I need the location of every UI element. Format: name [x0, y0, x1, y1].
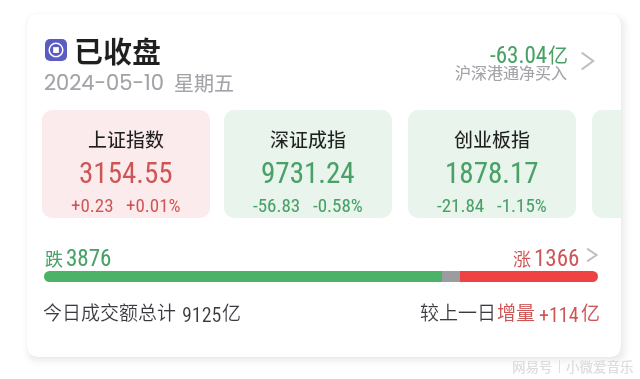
staticText: 亿 — [581, 298, 601, 326]
button[interactable]: 创业板指 — [408, 110, 576, 218]
staticText: 较上一日 — [420, 298, 497, 326]
staticText: 增量 — [497, 298, 536, 326]
staticText: 2024-05-10 — [44, 68, 164, 97]
staticText: 小微爱音乐 — [566, 356, 634, 376]
button[interactable]: 深证成指 — [224, 110, 392, 218]
staticText: 今日成交额总计 — [43, 298, 177, 326]
staticText: 9125 — [182, 303, 222, 326]
staticText: +0.23 — [71, 194, 114, 216]
staticText: 创业板指 — [454, 125, 531, 153]
staticText: 亿 — [548, 40, 568, 69]
staticText: 1878.17 — [445, 156, 539, 190]
staticText: 深证成指 — [270, 125, 347, 153]
staticText: 沪深港通净买入 — [455, 60, 568, 83]
staticText: +114 — [539, 303, 579, 326]
staticText: 上证指数 — [88, 125, 165, 153]
button[interactable]: 跌 — [35, 242, 613, 298]
button[interactable]: 查看沪深港通详情 — [567, 43, 603, 79]
staticText: 3876 — [66, 245, 112, 272]
staticText: -63.04 — [490, 42, 548, 69]
staticText: +0.01% — [126, 194, 181, 216]
staticText: 亿 — [222, 298, 242, 326]
staticText: 1366 — [534, 245, 580, 272]
staticText: 涨 — [513, 245, 531, 271]
staticText: 9731.24 — [261, 156, 355, 190]
button[interactable]: 上证指数 — [42, 110, 210, 218]
staticText: -21.84 — [437, 194, 485, 216]
staticText: -56.83 — [253, 194, 301, 216]
staticText: 已收盘 — [74, 29, 162, 71]
staticText: 跌 — [45, 245, 63, 271]
staticText: 网易号 — [512, 356, 553, 376]
staticText: 星期五 — [174, 68, 234, 97]
staticText: -1.15% — [497, 194, 547, 216]
staticText: -0.58% — [313, 194, 363, 216]
staticText: 3154.55 — [79, 156, 173, 190]
